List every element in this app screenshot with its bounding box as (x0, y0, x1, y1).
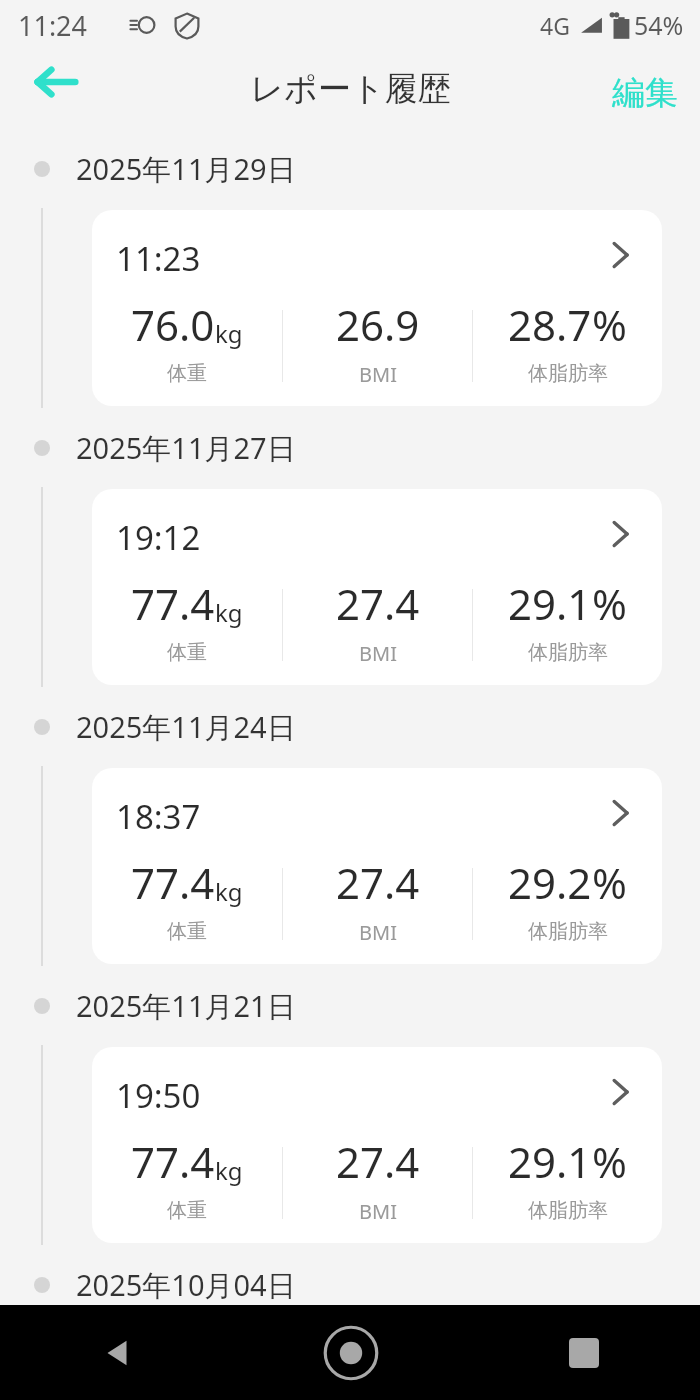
staticText: 2025年11月21日 (76, 986, 296, 1026)
button[interactable]: Home (234, 1305, 467, 1400)
staticText: BMI (359, 919, 397, 946)
staticText: 体脂肪率 (528, 640, 608, 665)
staticText: 体重 (167, 361, 207, 386)
button[interactable]: Back (0, 1305, 234, 1400)
staticText: 編集 (612, 72, 678, 114)
staticText: レポート履歴 (250, 68, 451, 110)
staticText: kg (215, 317, 243, 350)
staticText: 27.4 (336, 1133, 420, 1190)
staticText: 体脂肪率 (528, 919, 608, 944)
staticText: 2025年11月27日 (76, 428, 296, 468)
staticText: 19:50 (116, 1073, 201, 1118)
staticText: 19:12 (116, 515, 201, 560)
staticText: 77.4 (131, 854, 215, 911)
staticText: 26.9 (336, 296, 420, 353)
staticText: 4G (540, 10, 570, 41)
other: 詳細 (604, 517, 638, 551)
staticText: % (592, 575, 627, 632)
staticText: 27.4 (336, 575, 420, 632)
button[interactable]: 19:12 (92, 489, 662, 685)
staticText: 54% (634, 8, 684, 42)
staticText: % (592, 1133, 627, 1190)
staticText: 体重 (167, 919, 207, 944)
staticText: 2025年10月04日 (76, 1265, 296, 1305)
staticText: 29.1 (508, 1133, 592, 1190)
button[interactable]: 11:23 (92, 210, 662, 406)
staticText: 体脂肪率 (528, 1198, 608, 1223)
staticText: 2025年11月29日 (76, 149, 296, 189)
staticText: 29.1 (508, 575, 592, 632)
button[interactable]: 18:37 (92, 768, 662, 964)
staticText: kg (215, 875, 243, 908)
staticText: 77.4 (131, 575, 215, 632)
staticText: 76.0 (131, 296, 215, 353)
staticText: kg (215, 596, 243, 629)
staticText: 11:24 (18, 7, 88, 44)
other: 詳細 (604, 1075, 638, 1109)
staticText: 29.2 (508, 854, 592, 911)
other: 詳細 (604, 796, 638, 830)
button[interactable]: 編集 (600, 64, 690, 122)
staticText: BMI (359, 640, 397, 667)
staticText: BMI (359, 361, 397, 388)
staticText: % (592, 296, 627, 353)
button[interactable]: 19:50 (92, 1047, 662, 1243)
staticText: BMI (359, 1198, 397, 1225)
staticText: 2025年11月24日 (76, 707, 296, 747)
staticText: 27.4 (336, 854, 420, 911)
staticText: 11:23 (116, 236, 201, 281)
staticText: % (592, 854, 627, 911)
staticText: 体重 (167, 1198, 207, 1223)
other: 詳細 (604, 238, 638, 272)
staticText: 28.7 (508, 296, 592, 353)
staticText: kg (215, 1154, 243, 1187)
staticText: 体脂肪率 (528, 361, 608, 386)
staticText: 18:37 (116, 794, 201, 839)
staticText: 体重 (167, 640, 207, 665)
button[interactable]: 戻る (20, 46, 92, 118)
button[interactable]: Recents (467, 1305, 700, 1400)
staticText: 77.4 (131, 1133, 215, 1190)
